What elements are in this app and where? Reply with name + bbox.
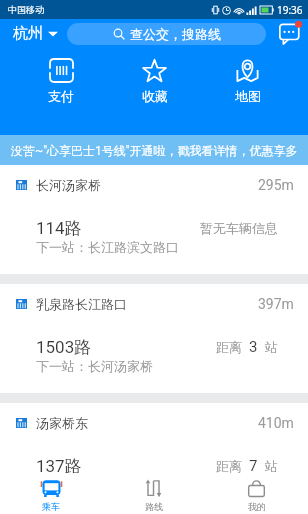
button[interactable]: 路线: [102, 473, 205, 514]
staticText: 114路: [36, 218, 82, 239]
staticText: 下一站：长江路滨文路口: [36, 239, 179, 255]
staticText: 19:36: [277, 3, 303, 17]
button[interactable]: 地图: [201, 48, 294, 104]
staticText: 地图: [235, 88, 261, 104]
button[interactable]: 收藏: [108, 48, 201, 104]
staticText: 长河汤家桥: [36, 177, 101, 193]
staticText: 410m: [258, 415, 294, 431]
staticText: 没苦~"心享巴士1号线"开通啦，戳我看详情，优惠享多: [11, 143, 298, 158]
staticText: 杭州: [13, 24, 43, 43]
staticText: 1503路: [36, 337, 92, 358]
staticText: 距离: [216, 339, 242, 355]
button[interactable]: 我的: [205, 473, 308, 514]
staticText: 路线: [145, 501, 163, 512]
button[interactable]: Messages: [272, 19, 308, 48]
staticText: 收藏: [142, 88, 168, 104]
staticText: 汤家桥东: [36, 415, 88, 431]
staticText: 支付: [48, 88, 74, 104]
staticText: 下一站：长河汤家桥: [36, 477, 153, 493]
staticText: 暂无车辆信息: [200, 220, 278, 236]
button[interactable]: 乳泉路长江路口: [0, 284, 308, 393]
staticText: 137路: [36, 456, 82, 477]
staticText: 乘车: [42, 501, 60, 512]
staticText: 我的: [248, 501, 266, 512]
button[interactable]: 支付: [14, 48, 108, 104]
staticText: 站: [265, 339, 278, 355]
staticText: 295m: [258, 177, 294, 193]
button[interactable]: 乘车: [0, 473, 102, 514]
staticText: 3: [249, 338, 258, 356]
staticText: 查公交，搜路线: [130, 26, 221, 42]
staticText: 中国移动: [8, 4, 44, 15]
button[interactable]: 长河汤家桥: [0, 165, 308, 274]
staticText: 距离: [216, 458, 242, 474]
staticText: 乳泉路长江路口: [36, 296, 127, 312]
staticText: 7: [249, 457, 258, 475]
button[interactable]: 杭州: [13, 24, 58, 43]
staticText: 397m: [258, 296, 294, 312]
button[interactable]: 汤家桥东: [0, 403, 308, 473]
button[interactable]: 查公交，搜路线: [67, 23, 266, 45]
staticText: 站: [265, 458, 278, 474]
staticText: 下一站：长河汤家桥: [36, 358, 153, 374]
button[interactable]: 没苦~"心享巴士1号线"开通啦，戳我看详情，优惠享多: [0, 135, 308, 165]
